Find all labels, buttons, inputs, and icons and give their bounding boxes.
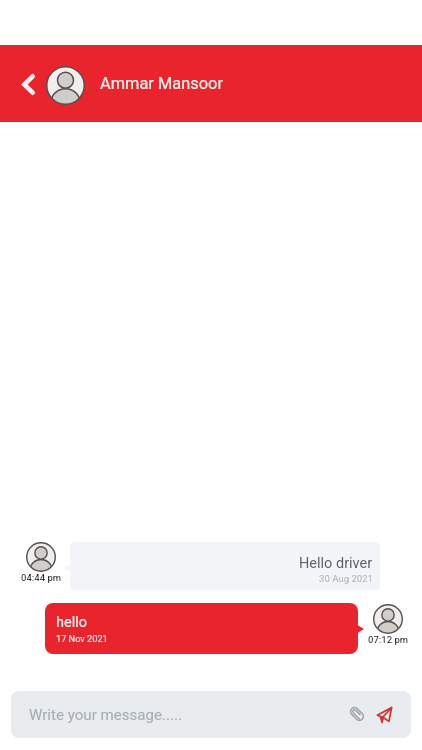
button[interactable]: Write your message..... [11,691,411,738]
staticText: Hello driver [299,555,373,572]
staticText: 04:44 pm [21,572,62,583]
staticText: 30 Aug 2021 [319,573,373,584]
staticText: Write your message..... [29,706,182,724]
button[interactable]: Send [375,701,403,729]
button[interactable]: Hello driver [70,542,380,590]
button[interactable]: hello [45,603,358,654]
staticText: 07:12 pm [368,634,409,645]
staticText: 17 Nov 2021 [56,633,108,644]
staticText: Ammar Mansoor [100,74,223,93]
button[interactable]: Attach file [345,701,373,729]
staticText: hello [56,614,87,631]
button[interactable]: Back [0,57,46,111]
